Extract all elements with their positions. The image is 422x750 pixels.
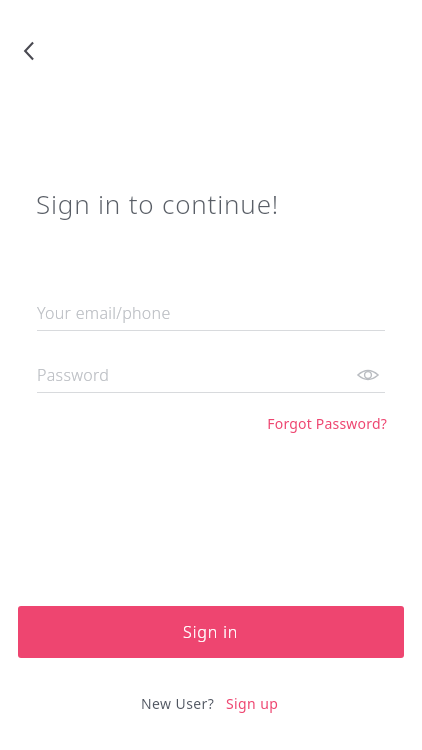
staticText: Sign in to continue!: [36, 186, 279, 221]
staticText: New User?: [141, 694, 215, 713]
button[interactable]: Back: [11, 33, 47, 69]
button[interactable]: Forgot Password?: [245, 414, 387, 433]
staticText: Sign in: [183, 621, 239, 643]
staticText: Password: [37, 364, 110, 386]
staticText: Your email/phone: [37, 302, 171, 324]
button[interactable]: Sign in: [18, 606, 404, 658]
staticText: Sign up: [226, 694, 279, 713]
staticText: Forgot Password?: [267, 414, 387, 433]
button[interactable]: Password: [37, 357, 385, 392]
button[interactable]: Show password: [351, 358, 385, 392]
button[interactable]: Sign up: [224, 692, 281, 715]
button[interactable]: Your email/phone: [37, 296, 385, 331]
